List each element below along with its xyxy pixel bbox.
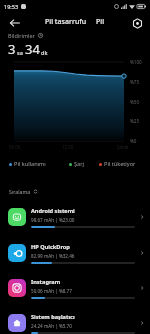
staticText: Android sistemi xyxy=(31,207,75,215)
staticText: 00.00 xyxy=(9,144,21,150)
staticText: %50 xyxy=(130,99,140,105)
staticText: Şarj xyxy=(74,160,84,168)
staticText: %75 xyxy=(130,79,140,85)
button[interactable]: Ayarlar xyxy=(128,14,146,32)
button[interactable]: Instagram xyxy=(0,271,150,305)
button[interactable]: Android sistemi xyxy=(0,200,150,234)
staticText: 50.06 mAh | %8.77 xyxy=(31,288,72,294)
staticText: Sistem başlatıcı xyxy=(31,313,75,321)
staticText: 19:53 xyxy=(4,3,19,10)
button[interactable]: Sıralama xyxy=(9,188,38,195)
staticText: 3 xyxy=(8,40,16,58)
staticText: dk xyxy=(41,49,48,56)
staticText: Sıralama xyxy=(9,188,31,195)
staticText: 98.67 mAh | %23.00 xyxy=(31,217,75,223)
staticText: HP QuickDrop xyxy=(31,243,70,251)
button[interactable]: Geri xyxy=(6,14,24,32)
staticText: Pil tüketiyor xyxy=(104,160,136,168)
staticText: 12.00 xyxy=(62,144,74,150)
staticText: 24.24 mAh | %5.70 xyxy=(31,323,72,329)
staticText: %25 xyxy=(130,118,140,124)
staticText: Pil xyxy=(96,17,105,27)
staticText: %0 xyxy=(130,138,137,144)
staticText: 82.99 mAh | %32.46 xyxy=(31,253,75,259)
staticText: %100 xyxy=(130,59,142,65)
staticText: 34 xyxy=(25,40,40,58)
staticText: sa xyxy=(17,49,23,56)
staticText: Bildirimler xyxy=(8,32,35,39)
staticText: Pil kullanımı xyxy=(14,160,46,168)
staticText: Pil tasarrufu xyxy=(45,17,87,27)
button[interactable]: Sistem başlatıcı xyxy=(0,306,150,334)
button[interactable]: HP QuickDrop xyxy=(0,236,150,270)
staticText: Şimdi xyxy=(117,144,129,150)
staticText: Instagram xyxy=(31,278,61,286)
